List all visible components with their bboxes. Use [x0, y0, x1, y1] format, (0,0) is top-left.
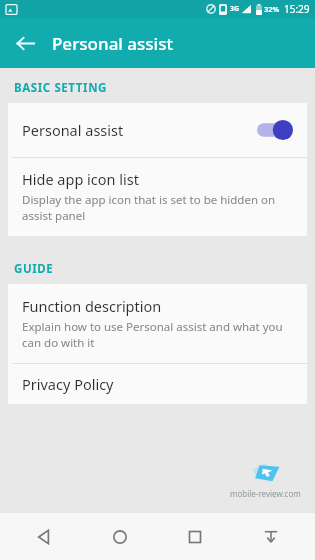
staticText: Display the app icon that is set to be h… — [22, 192, 293, 223]
button[interactable]: Back — [22, 515, 66, 559]
staticText: BASIC SETTING — [14, 80, 108, 96]
button[interactable]: Hide keyboard — [249, 515, 293, 559]
staticText: 3G — [230, 4, 240, 14]
button[interactable]: Hide app icon list — [8, 158, 307, 236]
staticText: Function description — [22, 296, 162, 316]
staticText: 15:29 — [284, 2, 310, 16]
staticText: Personal assist — [22, 120, 124, 140]
button[interactable]: Personal assist — [8, 103, 307, 157]
staticText: Hide app icon list — [22, 169, 139, 189]
staticText: Personal assist — [52, 32, 173, 55]
staticText: Privacy Policy — [22, 374, 114, 394]
staticText: GUIDE — [14, 261, 54, 277]
staticText: 32% — [264, 4, 280, 14]
button[interactable]: Back — [6, 24, 44, 62]
staticText: mobile-review.com — [230, 488, 301, 499]
button[interactable]: Recent apps — [173, 515, 217, 559]
button[interactable]: Function description — [8, 284, 307, 363]
button[interactable]: Home — [98, 515, 142, 559]
staticText: Explain how to use Personal assist and w… — [22, 319, 293, 350]
button[interactable]: Privacy Policy — [8, 364, 307, 404]
